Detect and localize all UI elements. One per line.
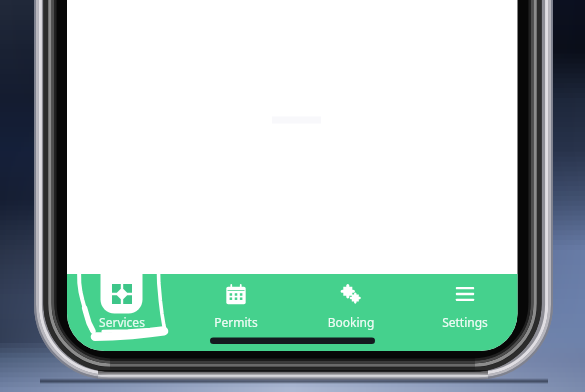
staticText: Services (67, 314, 177, 330)
button[interactable]: Services (67, 274, 177, 351)
staticText: Settings (410, 314, 520, 330)
button[interactable]: Booking (296, 274, 406, 351)
staticText: Permits (181, 314, 291, 330)
button[interactable]: Settings (410, 274, 520, 351)
button[interactable]: Permits (181, 274, 291, 351)
staticText: Booking (296, 314, 406, 330)
